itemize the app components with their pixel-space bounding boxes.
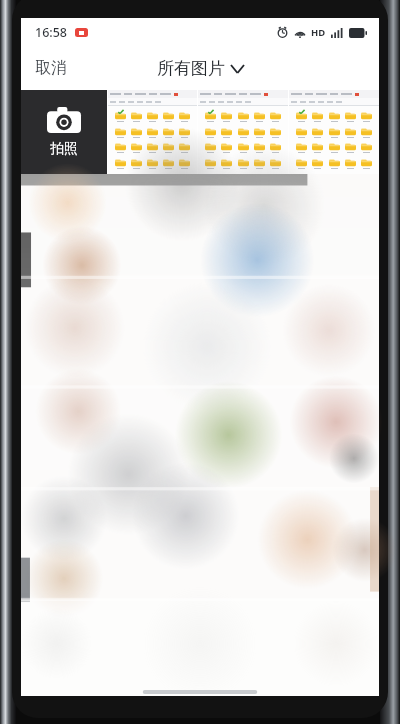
button[interactable]: 图片 <box>108 90 197 174</box>
staticText: 16:58 <box>35 24 68 41</box>
staticText: 所有图片 <box>157 58 225 79</box>
button[interactable]: 取消 <box>21 50 81 86</box>
staticText: 取消 <box>35 58 67 78</box>
staticText: 拍照 <box>50 140 78 158</box>
button[interactable]: 拍照 <box>21 90 107 174</box>
staticText: HD <box>311 26 326 39</box>
button[interactable]: 所有图片 <box>147 52 254 85</box>
button[interactable]: 图片 <box>289 90 379 174</box>
button[interactable]: 图片 <box>198 90 288 174</box>
